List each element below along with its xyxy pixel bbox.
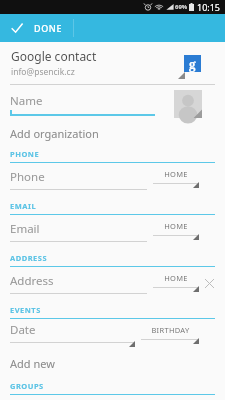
staticText: Name <box>10 93 43 109</box>
staticText: Address <box>10 273 54 289</box>
staticText: GROUPS <box>10 381 44 391</box>
staticText: 10:15 <box>197 1 221 13</box>
button[interactable]: Address <box>10 273 147 294</box>
button[interactable]: Add organization <box>0 123 225 143</box>
button[interactable]: Date <box>10 322 135 348</box>
staticText: g <box>189 56 196 72</box>
button[interactable]: Add contact photo <box>174 90 202 118</box>
button[interactable]: DONE <box>0 14 225 42</box>
staticText: info@psencik.cz <box>11 66 75 78</box>
button[interactable]: BIRTHDAY <box>141 325 199 345</box>
button[interactable]: Expand name fields <box>173 97 187 111</box>
staticText: Add new <box>10 356 55 371</box>
staticText: Add organization <box>10 126 99 141</box>
staticText: DONE <box>34 22 63 34</box>
staticText: HOME <box>164 273 188 283</box>
button[interactable]: HOME <box>153 221 199 241</box>
staticText: EVENTS <box>10 305 41 315</box>
staticText: EMAIL <box>10 201 37 211</box>
staticText: HOME <box>164 221 188 231</box>
staticText: ADDRESS <box>10 253 48 263</box>
staticText: Google contact <box>11 48 97 64</box>
staticText: HOME <box>164 169 188 179</box>
button[interactable]: HOME <box>153 169 199 189</box>
button[interactable]: Name <box>10 93 155 116</box>
button[interactable]: Remove field <box>201 275 217 291</box>
button[interactable]: Google account <box>184 55 201 72</box>
button[interactable]: Google contact <box>0 42 225 84</box>
staticText: PHONE <box>10 149 40 159</box>
staticText: Phone <box>10 169 45 185</box>
button[interactable]: Add new <box>0 351 225 375</box>
button[interactable]: Email <box>10 221 147 242</box>
staticText: 69% <box>175 3 188 11</box>
staticText: Date <box>10 322 36 338</box>
button[interactable]: HOME <box>153 273 199 293</box>
staticText: BIRTHDAY <box>151 325 190 335</box>
staticText: Email <box>10 221 40 237</box>
button[interactable]: Phone <box>10 169 147 190</box>
